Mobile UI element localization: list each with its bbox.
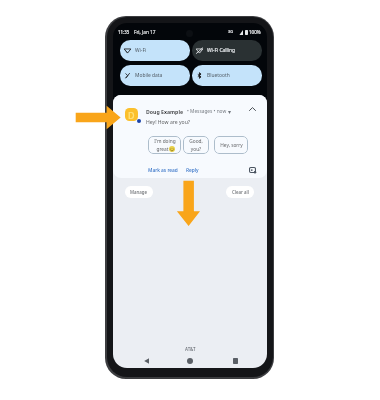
staticText: Clear all <box>232 189 249 195</box>
button[interactable]: Manage <box>125 186 153 198</box>
staticText: Reply <box>186 167 199 174</box>
button[interactable]: Recent apps <box>229 355 241 367</box>
button[interactable]: Mobile data <box>120 65 190 86</box>
button[interactable]: D <box>113 95 267 178</box>
staticText: 3G <box>228 29 234 34</box>
button[interactable]: I'm doing great <box>148 136 181 154</box>
staticText: Fri, Jan 17 <box>134 29 156 35</box>
button[interactable]: Open in app <box>247 164 258 175</box>
button[interactable]: Clear all <box>226 186 254 198</box>
button[interactable]: Hey, sorry <box>214 136 248 154</box>
button[interactable]: Good, you? <box>183 136 209 154</box>
staticText: • Messages • now <box>187 108 227 115</box>
staticText: Mobile data <box>135 72 163 79</box>
staticText: D <box>128 109 135 121</box>
staticText: Mark as read <box>148 167 178 174</box>
staticText: Good, you? <box>189 138 203 153</box>
staticText: AT&T <box>185 346 196 352</box>
button[interactable]: Bluetooth <box>192 65 262 86</box>
button[interactable]: Back <box>140 355 152 367</box>
staticText: 11:35 <box>118 29 130 35</box>
button[interactable]: Wi-Fi <box>120 40 190 61</box>
button[interactable]: Home <box>184 355 196 367</box>
staticText: Hey! How are you? <box>146 119 191 126</box>
button[interactable]: Mark as read <box>148 167 178 174</box>
staticText: Manage <box>130 189 148 195</box>
button[interactable]: Collapse notification <box>247 103 258 114</box>
staticText: Hey, sorry <box>220 142 243 149</box>
button[interactable]: Reply <box>186 167 199 174</box>
staticText: 100% <box>249 29 261 35</box>
staticText: Doug Example <box>146 108 184 115</box>
staticText: I'm doing great <box>154 138 176 153</box>
staticText: Bluetooth <box>207 72 230 79</box>
staticText: Wi-Fi Calling <box>207 47 236 54</box>
button[interactable]: Wi-Fi Calling <box>192 40 262 61</box>
staticText: Wi-Fi <box>135 47 147 54</box>
